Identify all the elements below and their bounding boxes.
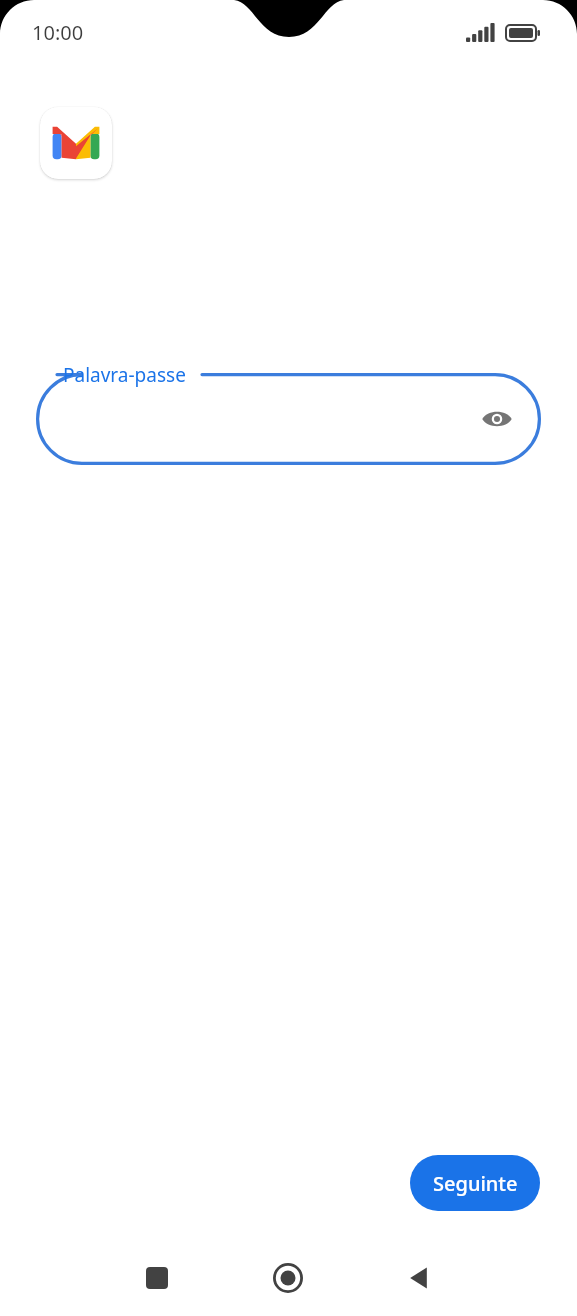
button[interactable]: Palavra-passe bbox=[36, 373, 541, 465]
button[interactable]: Home bbox=[265, 1255, 311, 1301]
button[interactable]: Mostrar palavra-passe bbox=[475, 397, 519, 441]
button[interactable]: Seguinte bbox=[410, 1155, 540, 1211]
staticText: 10:00 bbox=[32, 19, 84, 46]
button[interactable]: Gmail bbox=[40, 107, 112, 179]
button[interactable]: Recents bbox=[134, 1255, 180, 1301]
staticText: Seguinte bbox=[433, 1170, 518, 1197]
button[interactable]: Back bbox=[396, 1255, 442, 1301]
staticText: Palavra-passe bbox=[63, 362, 186, 388]
